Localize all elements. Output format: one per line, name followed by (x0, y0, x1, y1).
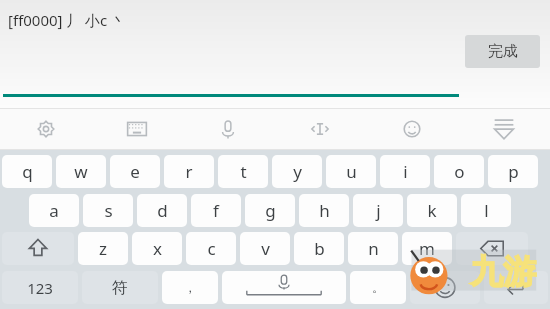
button[interactable]: r (164, 155, 214, 188)
staticText: c (207, 237, 216, 260)
button[interactable]: b (294, 232, 344, 265)
button[interactable]: f (191, 194, 241, 227)
staticText: u (346, 160, 357, 183)
staticText: f (213, 199, 219, 222)
button[interactable]: q (2, 155, 52, 188)
staticText: 丿 小c 丶 (66, 10, 127, 30)
button[interactable]: e (110, 155, 160, 188)
button[interactable]: Settings (0, 108, 91, 150)
staticText: j (376, 199, 381, 222)
staticText: e (130, 160, 140, 183)
button[interactable]: l (461, 194, 511, 227)
staticText: a (49, 199, 59, 222)
staticText: g (265, 199, 276, 222)
button[interactable]: Backspace (456, 232, 528, 265)
button[interactable]: Keyboard layout (91, 108, 182, 150)
button[interactable]: a (29, 194, 79, 227)
staticText: 九游 (470, 251, 536, 293)
staticText: p (508, 160, 519, 183)
staticText: d (157, 199, 168, 222)
button[interactable]: Move cursor (274, 108, 366, 150)
button[interactable]: 符 (82, 271, 158, 304)
staticText: 完成 (488, 42, 518, 61)
staticText: l (484, 199, 489, 222)
staticText: z (99, 237, 107, 260)
staticText: o (454, 160, 465, 183)
staticText: n (368, 237, 379, 260)
button[interactable]: z (78, 232, 128, 265)
staticText: 123 (27, 278, 53, 298)
button[interactable]: 完成 (465, 35, 540, 68)
button[interactable]: s (83, 194, 133, 227)
staticText: t (240, 160, 247, 183)
button[interactable]: ， (162, 271, 218, 304)
button[interactable]: y (272, 155, 322, 188)
button[interactable]: m (402, 232, 452, 265)
button[interactable]: Hide keyboard (458, 108, 550, 150)
staticText: i (403, 160, 408, 183)
button[interactable]: Emoji (366, 108, 458, 150)
staticText: q (22, 160, 33, 183)
button[interactable]: k (407, 194, 457, 227)
staticText: 。 (372, 280, 384, 295)
staticText: h (319, 199, 330, 222)
button[interactable]: u (326, 155, 376, 188)
button[interactable]: d (137, 194, 187, 227)
staticText: b (314, 237, 325, 260)
staticText: k (427, 199, 437, 222)
button[interactable]: Emoji (410, 271, 480, 304)
button[interactable]: Shift (2, 232, 74, 265)
button[interactable]: h (299, 194, 349, 227)
staticText: m (419, 237, 435, 260)
staticText: ， (184, 280, 196, 295)
button[interactable]: 。 (350, 271, 406, 304)
staticText: w (74, 160, 88, 183)
staticText: 符 (112, 278, 128, 298)
staticText: x (153, 237, 162, 260)
button[interactable]: Enter (484, 271, 548, 304)
staticText: v (261, 237, 270, 260)
button[interactable]: c (186, 232, 236, 265)
button[interactable]: j (353, 194, 403, 227)
button[interactable]: g (245, 194, 295, 227)
button[interactable]: Space (222, 271, 346, 304)
button[interactable]: n (348, 232, 398, 265)
button[interactable]: i (380, 155, 430, 188)
button[interactable]: 123 (2, 271, 78, 304)
staticText: y (293, 160, 302, 183)
button[interactable]: v (240, 232, 290, 265)
staticText: s (104, 199, 113, 222)
button[interactable]: Voice input (182, 108, 274, 150)
button[interactable]: t (218, 155, 268, 188)
button[interactable]: p (488, 155, 538, 188)
button[interactable]: o (434, 155, 484, 188)
button[interactable]: w (56, 155, 106, 188)
button[interactable]: x (132, 232, 182, 265)
staticText: [ff0000] (8, 10, 63, 30)
staticText: r (185, 160, 193, 183)
